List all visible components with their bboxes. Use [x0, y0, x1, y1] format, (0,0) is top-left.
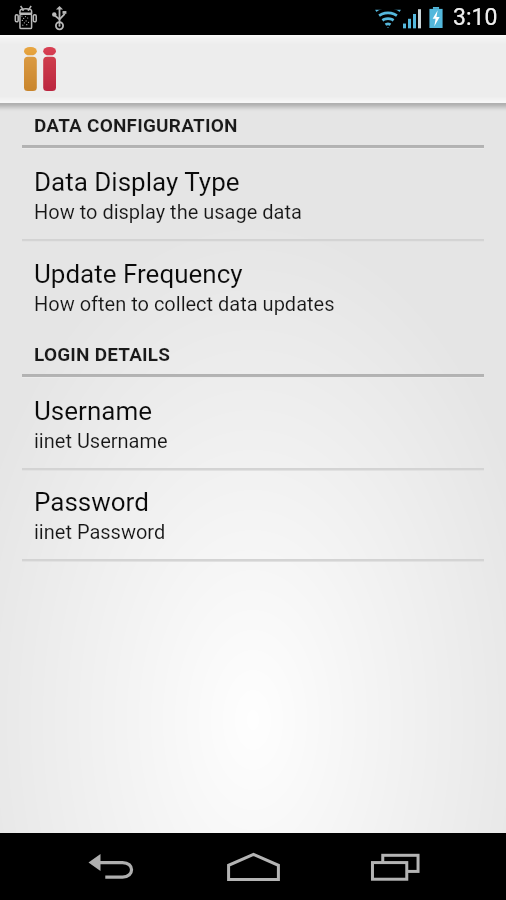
staticText: Password — [34, 487, 149, 517]
staticText: iinet Password — [34, 520, 166, 543]
staticText: iinet Username — [34, 429, 168, 452]
button[interactable]: Update Frequency — [0, 259, 506, 325]
staticText: Username — [34, 396, 152, 426]
staticText: How to display the usage data — [34, 200, 302, 223]
button[interactable]: Home — [227, 833, 280, 900]
staticText: How often to collect data updates — [34, 292, 335, 315]
staticText: LOGIN DETAILS — [34, 343, 171, 365]
button[interactable]: Back — [88, 833, 136, 900]
button[interactable]: Password — [0, 487, 506, 553]
staticText: 3:10 — [453, 4, 498, 31]
button[interactable]: Data Display Type — [0, 167, 506, 233]
staticText: Update Frequency — [34, 259, 243, 289]
button[interactable]: Username — [0, 396, 506, 462]
staticText: DATA CONFIGURATION — [34, 114, 238, 136]
button[interactable]: Recents — [371, 833, 420, 900]
staticText: Data Display Type — [34, 167, 240, 197]
button[interactable]: iiNet home — [0, 35, 80, 103]
